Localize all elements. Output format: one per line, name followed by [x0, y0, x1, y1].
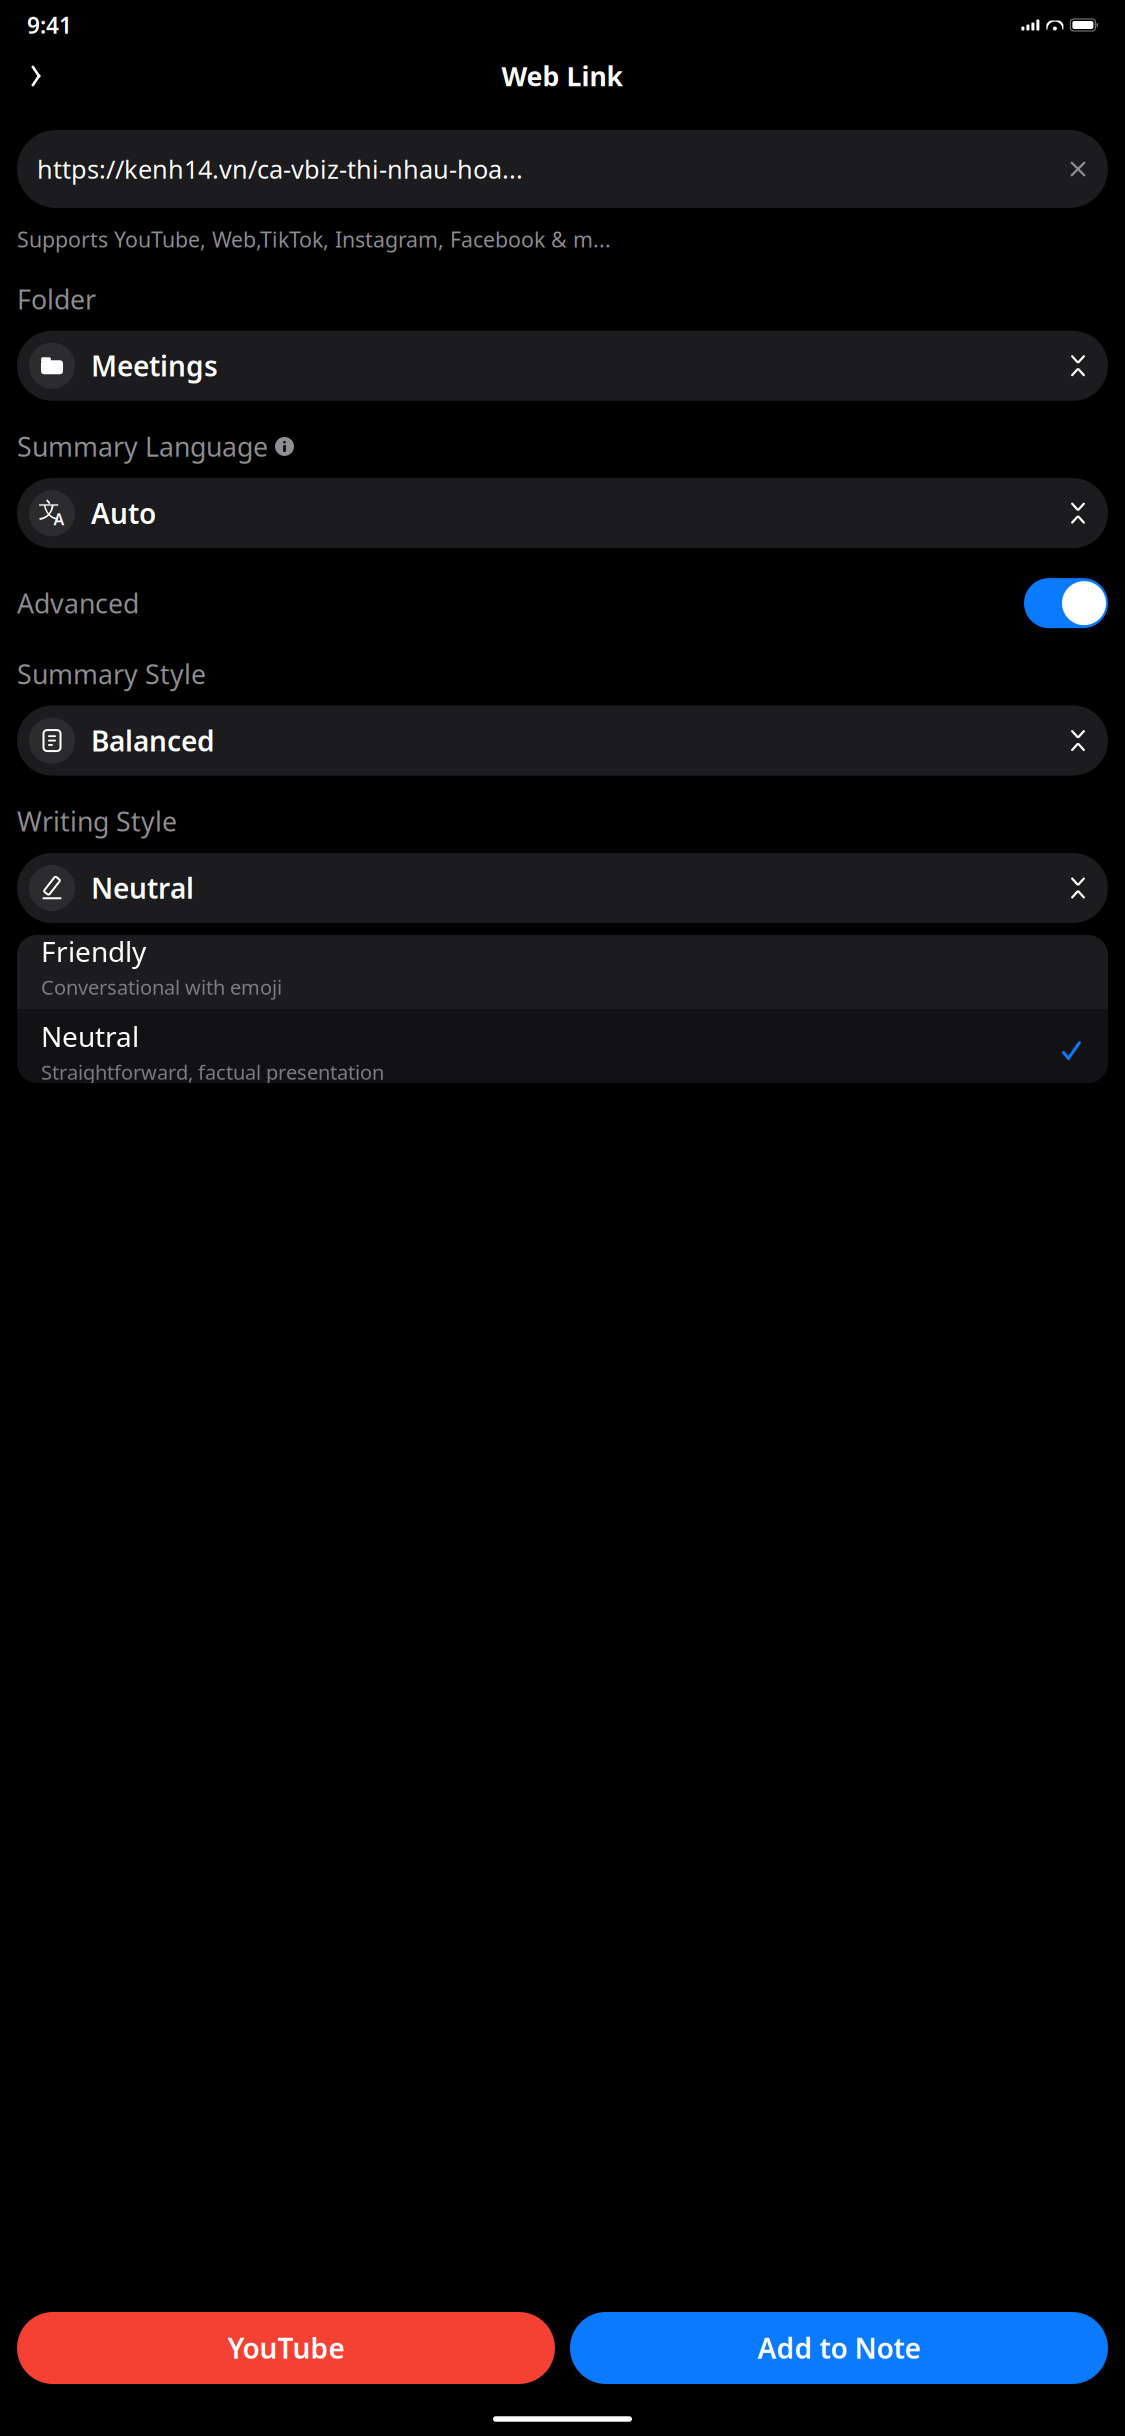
staticText: Writing Style — [17, 804, 177, 839]
staticText: Web Link — [501, 58, 623, 94]
staticText: Advanced — [17, 585, 139, 621]
staticText: Supports YouTube, Web,TikTok, Instagram,… — [17, 225, 611, 253]
staticText: Balanced — [91, 722, 215, 759]
staticText: A — [53, 508, 64, 530]
staticText: Friendly — [41, 933, 146, 970]
button[interactable]: Neutral — [17, 853, 1108, 923]
staticText: Straightforward, factual presentation — [41, 1059, 384, 1085]
button[interactable]: 文 — [17, 478, 1108, 548]
button[interactable]: Neutral — [17, 1009, 1108, 1094]
staticText: Folder — [17, 281, 96, 317]
staticText: https://kenh14.vn/ca-vbiz-thi-nhau-hoa..… — [37, 152, 523, 186]
staticText: Auto — [91, 495, 156, 532]
button[interactable]: Meetings — [17, 331, 1108, 401]
button[interactable]: Add to Note — [570, 2312, 1108, 2384]
staticText: Add to Note — [757, 2329, 920, 2367]
button[interactable]: Balanced — [17, 706, 1108, 776]
button[interactable]: Friendly — [17, 924, 1108, 1009]
staticText: Neutral — [41, 1018, 139, 1055]
button[interactable]: YouTube — [17, 2312, 555, 2384]
button[interactable]: https://kenh14.vn/ca-vbiz-thi-nhau-hoa..… — [17, 130, 1108, 208]
staticText: Summary Style — [17, 656, 206, 692]
button[interactable]: Advanced — [1024, 578, 1108, 628]
staticText: 文 — [38, 497, 59, 523]
staticText: Meetings — [91, 347, 218, 384]
staticText: Summary Language — [17, 429, 268, 464]
button[interactable]: Back — [14, 54, 58, 98]
staticText: Neutral — [91, 869, 194, 907]
staticText: Conversational with emoji — [41, 974, 282, 1000]
staticText: YouTube — [227, 2329, 344, 2367]
staticText: 9:41 — [27, 10, 72, 40]
